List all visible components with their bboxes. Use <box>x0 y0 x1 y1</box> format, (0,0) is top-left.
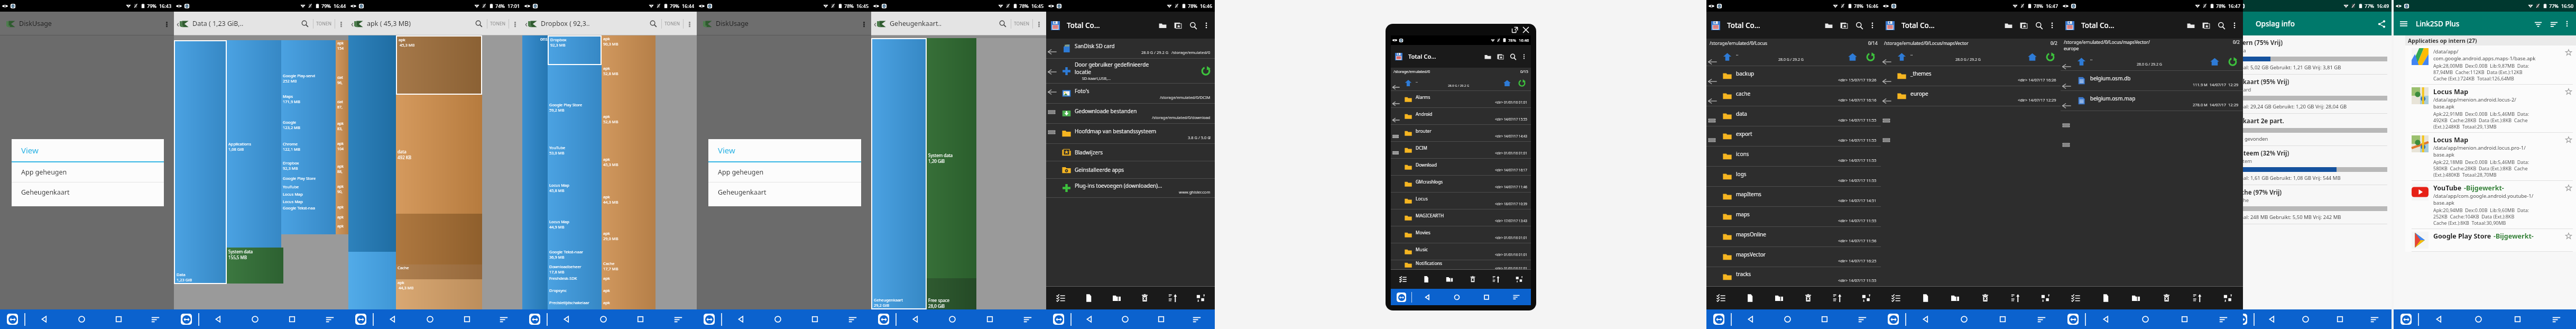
button[interactable]: More options <box>162 19 171 29</box>
button[interactable]: New file <box>1075 287 1103 309</box>
button[interactable]: Menu <box>485 309 522 329</box>
button[interactable]: Recents <box>1983 309 2022 329</box>
button[interactable]: More options <box>336 19 346 29</box>
button[interactable]: TeamViewer <box>174 309 198 329</box>
button[interactable]: TeamViewer <box>2243 309 2254 329</box>
button[interactable]: TONEN <box>316 21 332 27</box>
button[interactable]: Home <box>236 309 273 329</box>
button[interactable]: Sort <box>1823 287 1852 309</box>
button[interactable]: belgium.osm.db <box>2061 71 2243 90</box>
button[interactable]: Back <box>199 309 236 329</box>
button[interactable]: TeamViewer <box>522 309 547 329</box>
button[interactable]: Home <box>2126 309 2165 329</box>
button[interactable]: Menu <box>1179 309 1215 329</box>
button[interactable]: Delete <box>1131 287 1159 309</box>
button[interactable]: Back <box>2419 309 2459 329</box>
button[interactable]: Menu <box>311 309 348 329</box>
button[interactable]: Menu <box>2398 18 2409 30</box>
button[interactable]: Move <box>1187 287 1215 309</box>
button[interactable]: Intern (75% Vrij) <box>2243 35 2387 75</box>
button[interactable]: More options <box>859 19 869 29</box>
button[interactable]: mapItems <box>1706 187 1881 206</box>
button[interactable]: SD kaart (95% Vrij) <box>2243 75 2387 114</box>
button[interactable]: Total Commander <box>1885 20 1895 31</box>
button[interactable]: Search <box>997 18 1009 30</box>
button[interactable]: YouTube <box>2405 181 2576 229</box>
button[interactable]: More options <box>1520 52 1528 60</box>
button[interactable]: New file <box>2091 287 2121 309</box>
button[interactable]: mapsOnline <box>1706 227 1881 246</box>
button[interactable]: Home <box>2459 309 2498 329</box>
button[interactable]: More options <box>510 19 520 29</box>
button[interactable]: Menu <box>137 309 174 329</box>
button[interactable]: Menu <box>2022 309 2061 329</box>
button[interactable]: Gedownloade bestanden <box>1046 104 1215 123</box>
button[interactable]: Move <box>2212 287 2243 309</box>
button[interactable]: TeamViewer <box>2061 309 2085 329</box>
button[interactable]: Recents <box>2498 309 2537 329</box>
button[interactable]: Locus Map <box>2405 85 2576 133</box>
button[interactable]: Door gebruiker gedefinieerde locatie <box>1046 59 1215 83</box>
button[interactable]: Android <box>1391 108 1531 124</box>
button[interactable]: New folder <box>2002 20 2014 31</box>
button[interactable]: Menu <box>2204 309 2243 329</box>
button[interactable]: Music <box>1391 243 1531 260</box>
button[interactable]: Recents <box>796 309 834 329</box>
button[interactable]: Back <box>25 309 63 329</box>
button[interactable]: App geheugen <box>12 162 164 182</box>
button[interactable]: DCIM <box>1391 142 1531 158</box>
button[interactable]: Zip <box>1103 287 1131 309</box>
button[interactable]: Delete <box>1461 270 1484 289</box>
button[interactable]: Notifications <box>1391 260 1531 269</box>
button[interactable]: Home <box>2288 309 2323 329</box>
button[interactable]: SD kaart 2e part. <box>2243 114 2387 146</box>
button[interactable]: Home <box>1107 309 1143 329</box>
button[interactable]: Locus Map <box>2405 133 2576 181</box>
button[interactable]: Back <box>374 309 411 329</box>
button[interactable]: Select <box>1391 270 1415 289</box>
button[interactable]: Refresh <box>2226 55 2239 68</box>
button[interactable]: Back <box>1732 309 1769 329</box>
button[interactable]: Search <box>1508 52 1518 61</box>
button[interactable]: Home <box>1502 78 1512 88</box>
button[interactable]: icons <box>1706 147 1881 166</box>
button[interactable]: tracks <box>1706 267 1881 286</box>
button[interactable]: Locus <box>1391 193 1531 209</box>
button[interactable]: Sort <box>2548 18 2560 30</box>
button[interactable]: New folder <box>2185 20 2196 31</box>
button[interactable]: Zip <box>1438 270 1461 289</box>
button[interactable]: Menu <box>2357 309 2392 329</box>
button[interactable]: Zip <box>1765 287 1794 309</box>
button[interactable]: Systeem (32% Vrij) <box>2243 146 2387 185</box>
button[interactable]: Select <box>1046 287 1075 309</box>
button[interactable]: backup <box>1706 66 1881 86</box>
button[interactable]: Search <box>473 18 485 30</box>
button[interactable]: Move <box>2030 287 2061 309</box>
button[interactable]: SanDisk SD card <box>1046 39 1215 58</box>
button[interactable]: Search <box>1187 20 1199 31</box>
button[interactable]: Favorite <box>2564 232 2573 240</box>
button[interactable]: Recents <box>2165 309 2204 329</box>
button[interactable]: Bookmarks <box>1495 52 1505 61</box>
button[interactable]: Zip <box>2121 287 2151 309</box>
button[interactable]: maps <box>1706 207 1881 226</box>
button[interactable]: Back <box>2086 309 2126 329</box>
button[interactable]: TONEN <box>664 21 680 27</box>
button[interactable]: Select <box>1706 287 1735 309</box>
button[interactable]: Recents <box>100 309 137 329</box>
button[interactable]: Bookmarks <box>2018 20 2029 31</box>
button[interactable]: Back <box>1906 309 1945 329</box>
button[interactable]: Delete <box>1970 287 2000 309</box>
button[interactable]: Favorite <box>2564 48 2573 57</box>
button[interactable]: Home <box>934 309 971 329</box>
button[interactable]: New folder <box>1157 20 1168 31</box>
button[interactable]: Back <box>897 309 934 329</box>
button[interactable]: Delete <box>2151 287 2182 309</box>
button[interactable]: Search <box>2215 20 2227 31</box>
button[interactable]: Foto's <box>1046 84 1215 103</box>
button[interactable]: Alarms <box>1391 91 1531 107</box>
button[interactable]: TONEN <box>1014 21 1030 27</box>
button[interactable]: MAGICEARTH <box>1391 209 1531 226</box>
button[interactable]: New file <box>1910 287 1940 309</box>
